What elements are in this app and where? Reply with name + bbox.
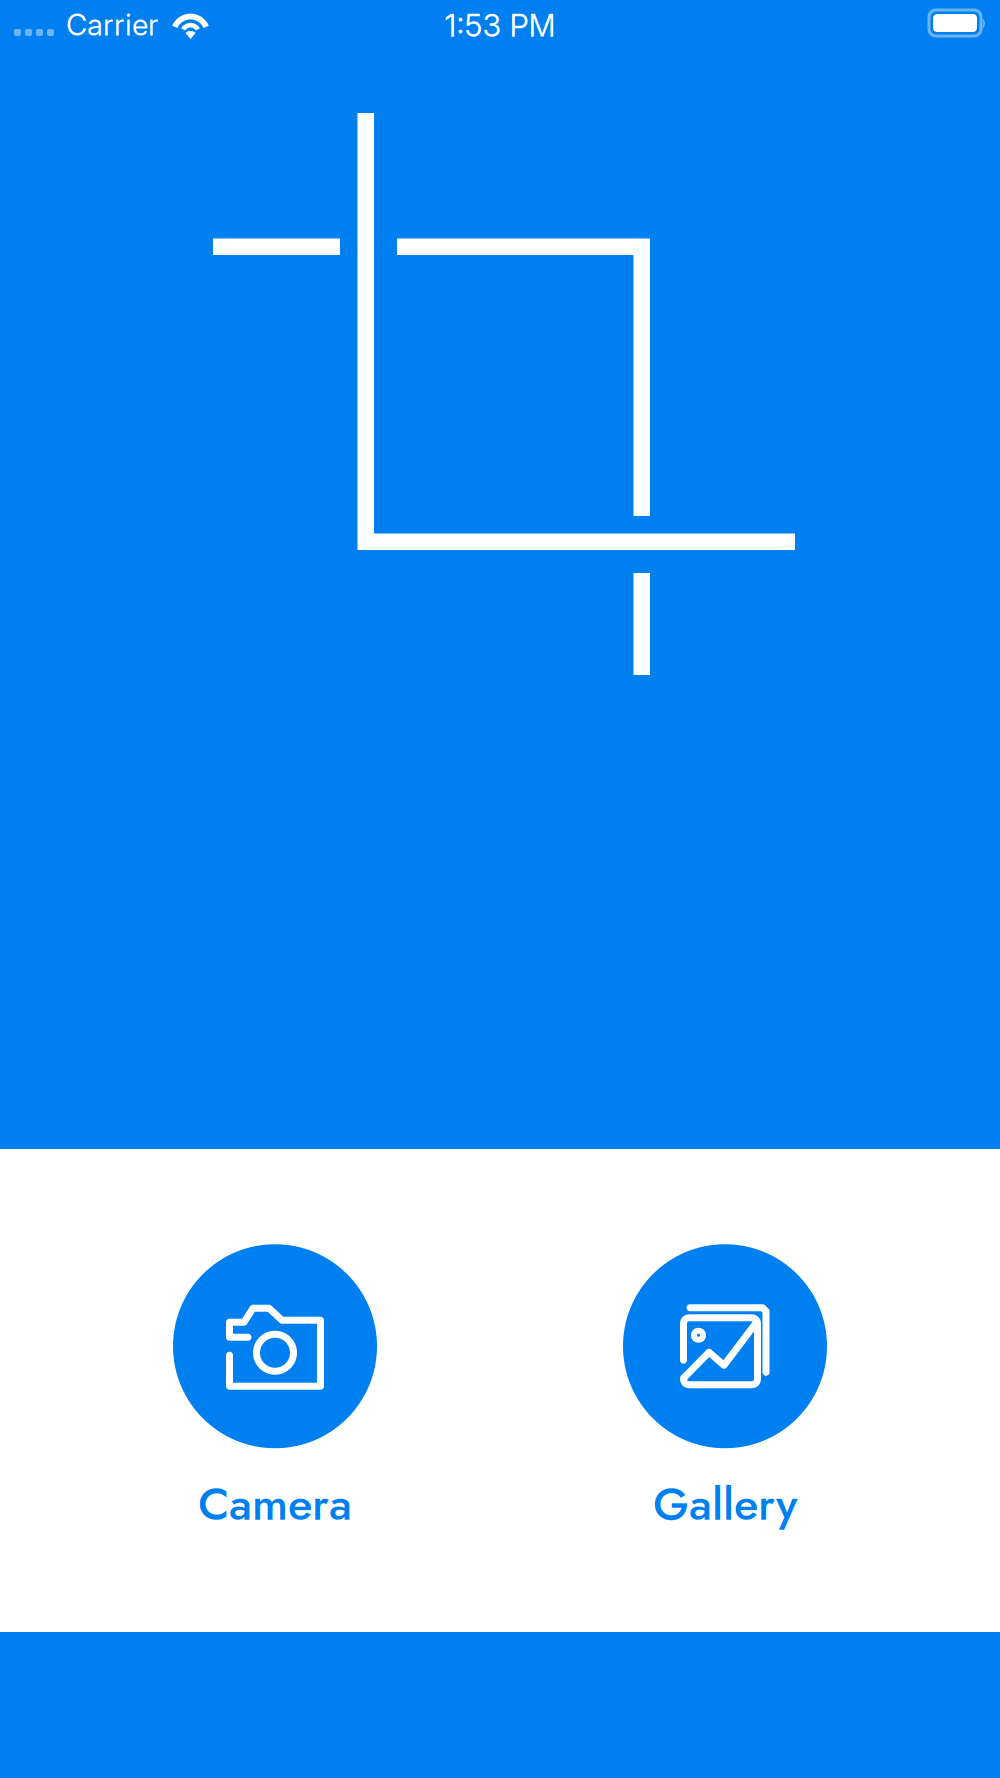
staticText: Gallery: [653, 1471, 797, 1537]
staticText: 1:53 PM: [444, 7, 555, 44]
staticText: Camera: [198, 1471, 352, 1537]
button[interactable]: Gallery: [595, 1244, 855, 1537]
staticText: Carrier: [66, 7, 158, 42]
button[interactable]: Camera: [145, 1244, 405, 1537]
